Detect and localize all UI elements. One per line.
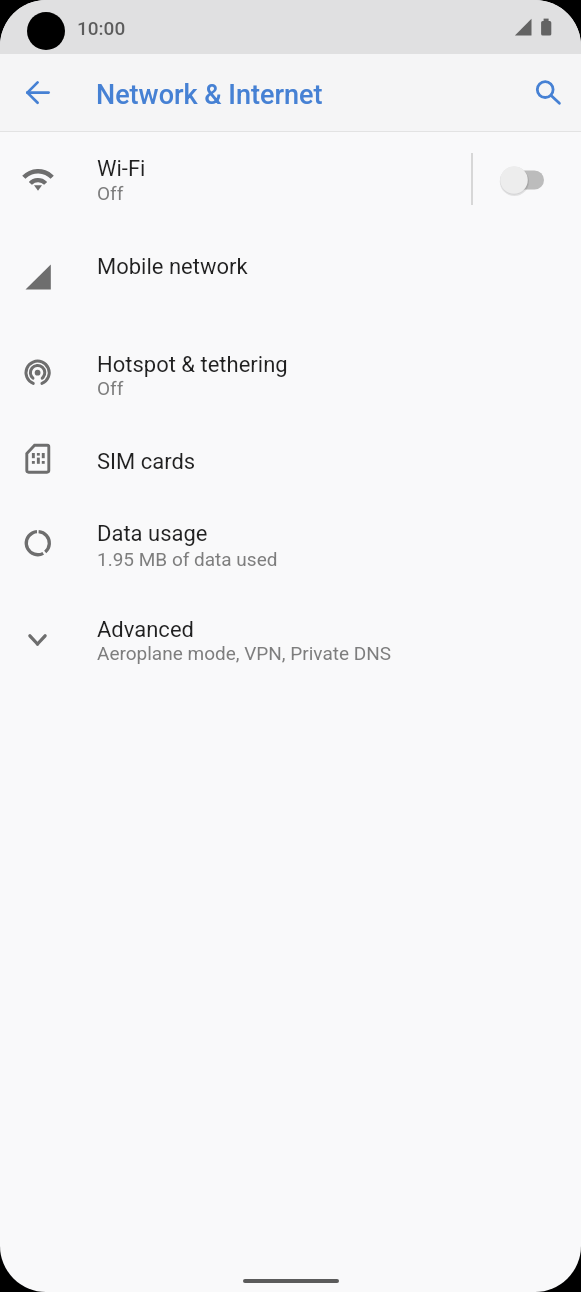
button[interactable]: Advanced <box>0 589 581 684</box>
staticText: Mobile network <box>97 254 248 280</box>
button[interactable]: Home <box>0 1248 581 1292</box>
staticText: SIM cards <box>97 449 196 475</box>
staticText: Off <box>97 377 124 399</box>
staticText: Wi-Fi <box>97 156 146 182</box>
staticText: Hotspot & tethering <box>97 352 288 378</box>
button[interactable]: SIM cards <box>0 416 581 501</box>
staticText: Network & Internet <box>96 79 323 111</box>
staticText: Aeroplane mode, VPN, Private DNS <box>97 642 392 664</box>
button[interactable]: Hotspot & tethering <box>0 318 581 416</box>
staticText: 1.95 MB of data used <box>97 548 278 570</box>
button[interactable]: Search <box>515 54 575 132</box>
staticText: Advanced <box>97 617 194 643</box>
button[interactable]: Mobile network <box>0 223 581 318</box>
button[interactable]: Back <box>8 54 68 132</box>
button[interactable]: Data usage <box>0 501 581 589</box>
button[interactable]: Wi-Fi toggle, off <box>481 146 581 214</box>
staticText: Off <box>97 182 124 204</box>
staticText: Data usage <box>97 521 208 547</box>
button[interactable]: Wi-Fi <box>0 133 581 223</box>
staticText: 10:00 <box>77 17 126 39</box>
